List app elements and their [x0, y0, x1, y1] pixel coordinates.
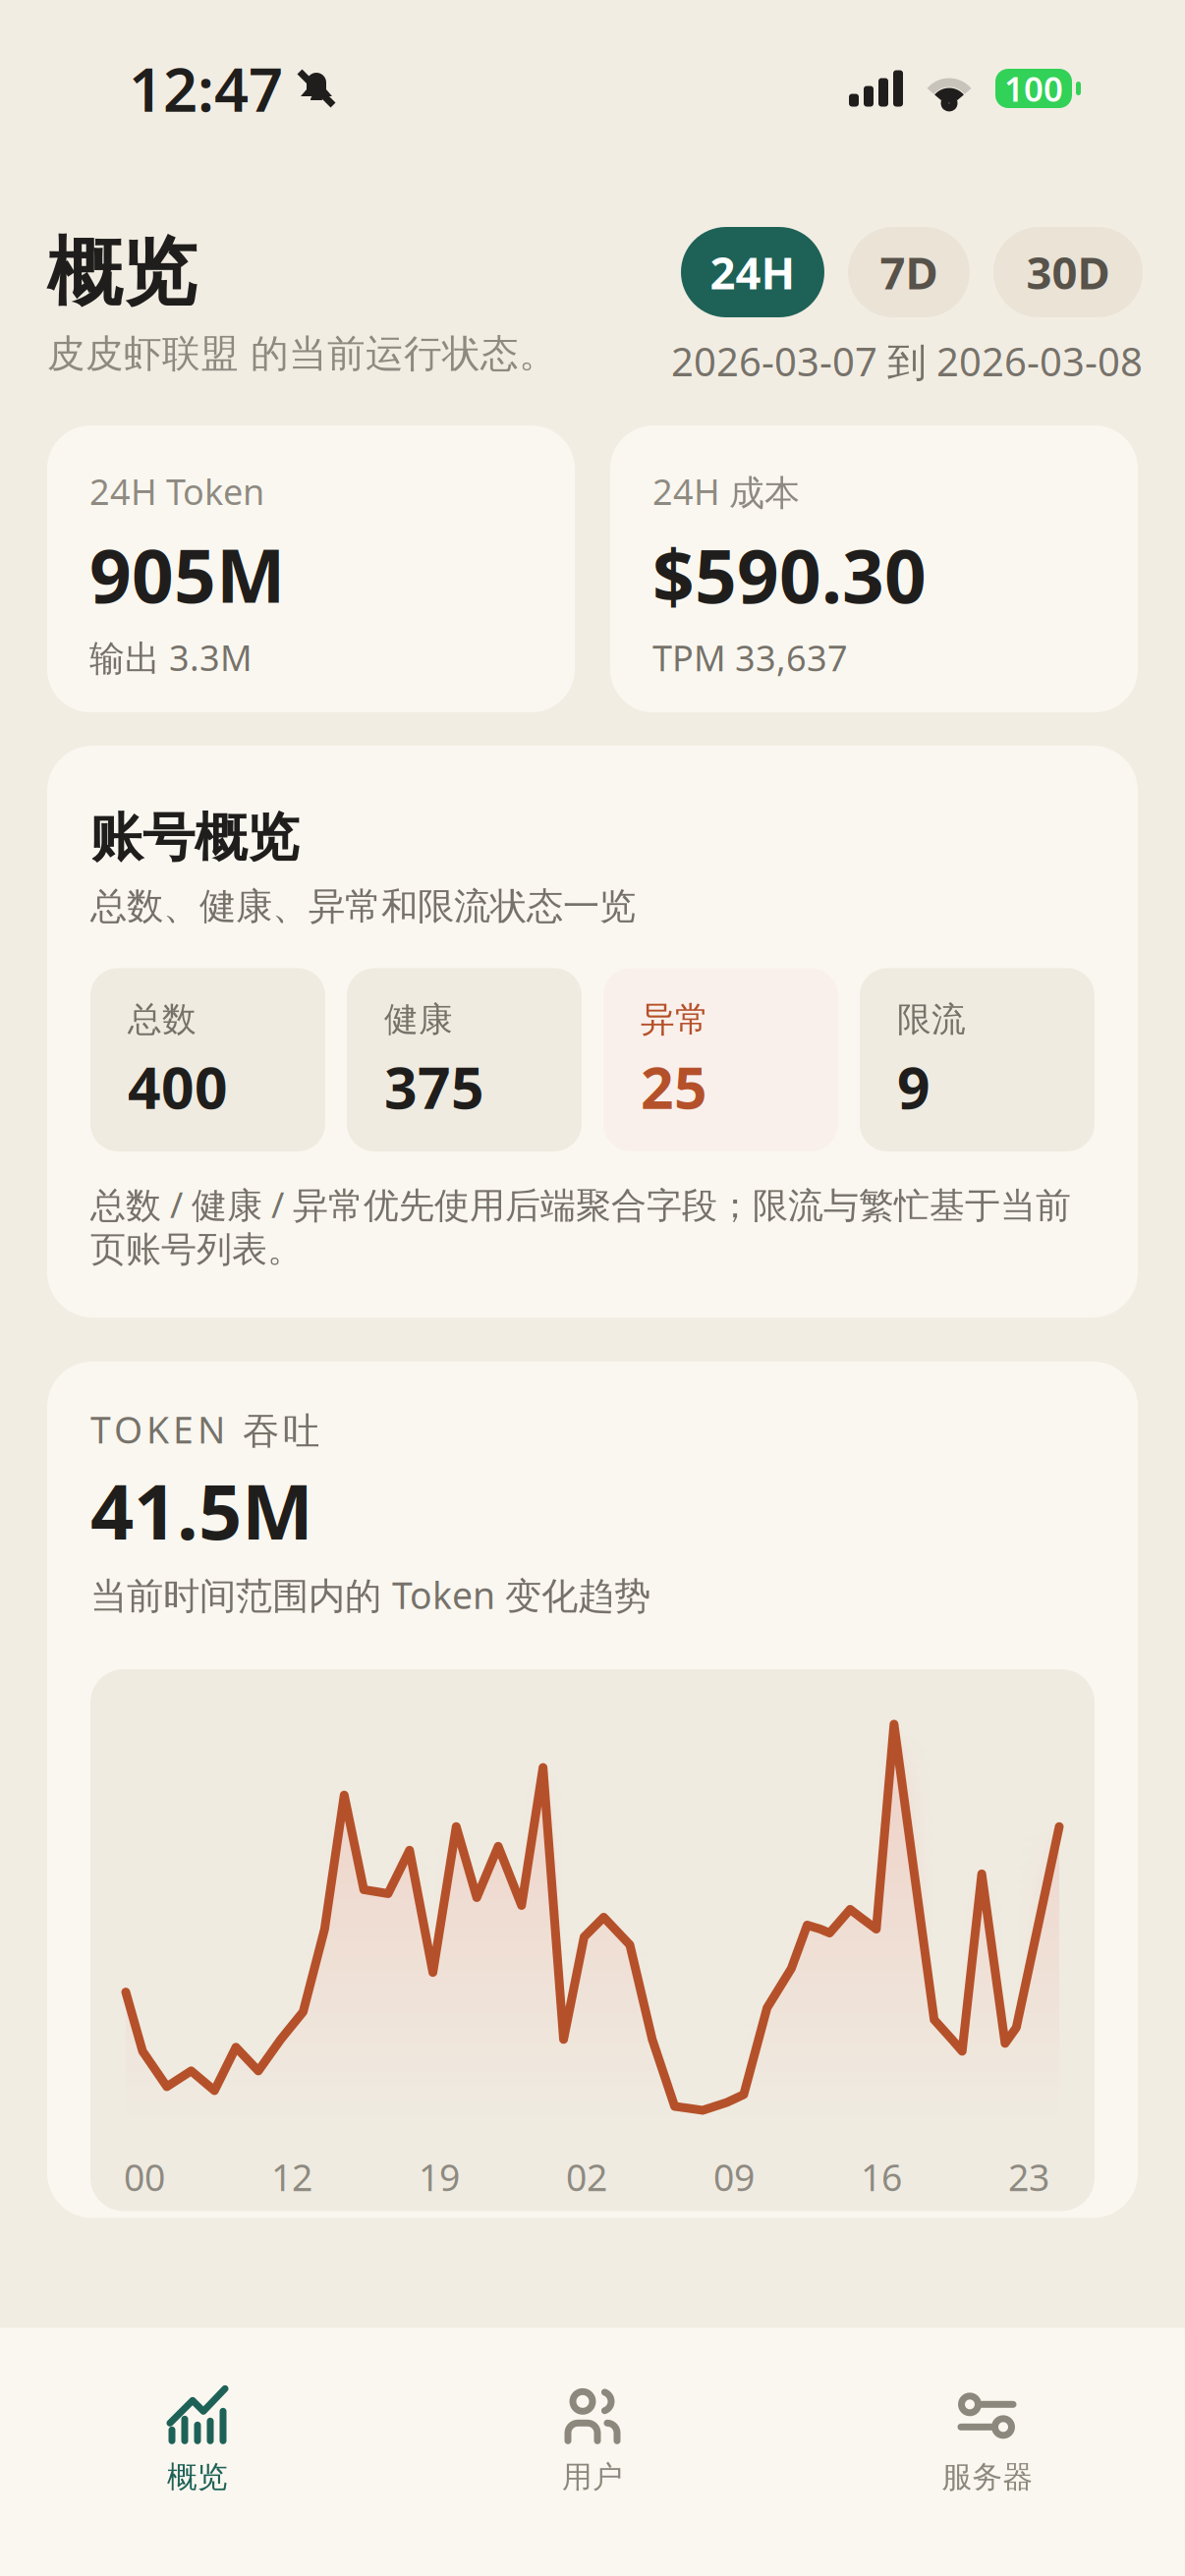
staticText: 9 [897, 1048, 931, 1125]
staticText: 375 [384, 1048, 484, 1125]
staticText: 02 [566, 2153, 607, 2201]
staticText: 总数 / 健康 / 异常优先使用后端聚合字段；限流与繁忙基于当前页账号列表。 [90, 1181, 1071, 1271]
button[interactable]: 30D [993, 227, 1143, 317]
staticText: 服务器 [942, 2458, 1033, 2495]
staticText: $590.30 [652, 526, 927, 623]
staticText: 23 [1008, 2153, 1049, 2201]
staticText: 09 [713, 2153, 755, 2201]
staticText: TOKEN 吞吐 [90, 1405, 319, 1454]
staticText: 00 [124, 2153, 165, 2201]
staticText: 账号概览 [90, 806, 299, 870]
staticText: 2026-03-07 到 2026-03-08 [671, 335, 1143, 387]
button[interactable]: 服务器 [790, 2328, 1185, 2576]
staticText: 41.5M [90, 1460, 313, 1561]
button[interactable]: 24H [681, 227, 824, 317]
staticText: 24H [710, 243, 795, 302]
staticText: 用户 [562, 2458, 623, 2495]
staticText: 7D [880, 243, 938, 302]
staticText: 905M [89, 526, 285, 623]
staticText: 25 [641, 1048, 707, 1125]
staticText: 19 [419, 2153, 460, 2201]
button[interactable]: 概览 [0, 2328, 395, 2576]
staticText: 12 [271, 2153, 312, 2201]
staticText: 限流 [897, 999, 966, 1040]
staticText: TPM 33,637 [652, 634, 848, 681]
staticText: 24H Token [89, 468, 264, 515]
staticText: 当前时间范围内的 Token 变化趋势 [90, 1570, 650, 1619]
staticText: 输出 3.3M [89, 634, 253, 681]
button[interactable]: 7D [848, 227, 970, 317]
staticText: 总数 [128, 999, 197, 1040]
staticText: 100 [1004, 66, 1063, 111]
staticText: 健康 [384, 999, 453, 1040]
staticText: 30D [1026, 243, 1110, 302]
staticText: 16 [861, 2153, 902, 2201]
staticText: 400 [128, 1048, 228, 1125]
staticText: 皮皮虾联盟 的当前运行状态。 [47, 330, 557, 377]
button[interactable]: 用户 [395, 2328, 790, 2576]
staticText: 异常 [641, 999, 709, 1040]
staticText: 概览 [167, 2458, 228, 2495]
staticText: 概览 [47, 227, 197, 319]
staticText: 24H 成本 [652, 468, 800, 515]
staticText: 总数、健康、异常和限流状态一览 [90, 884, 636, 929]
staticText: 12:47 [129, 48, 283, 128]
